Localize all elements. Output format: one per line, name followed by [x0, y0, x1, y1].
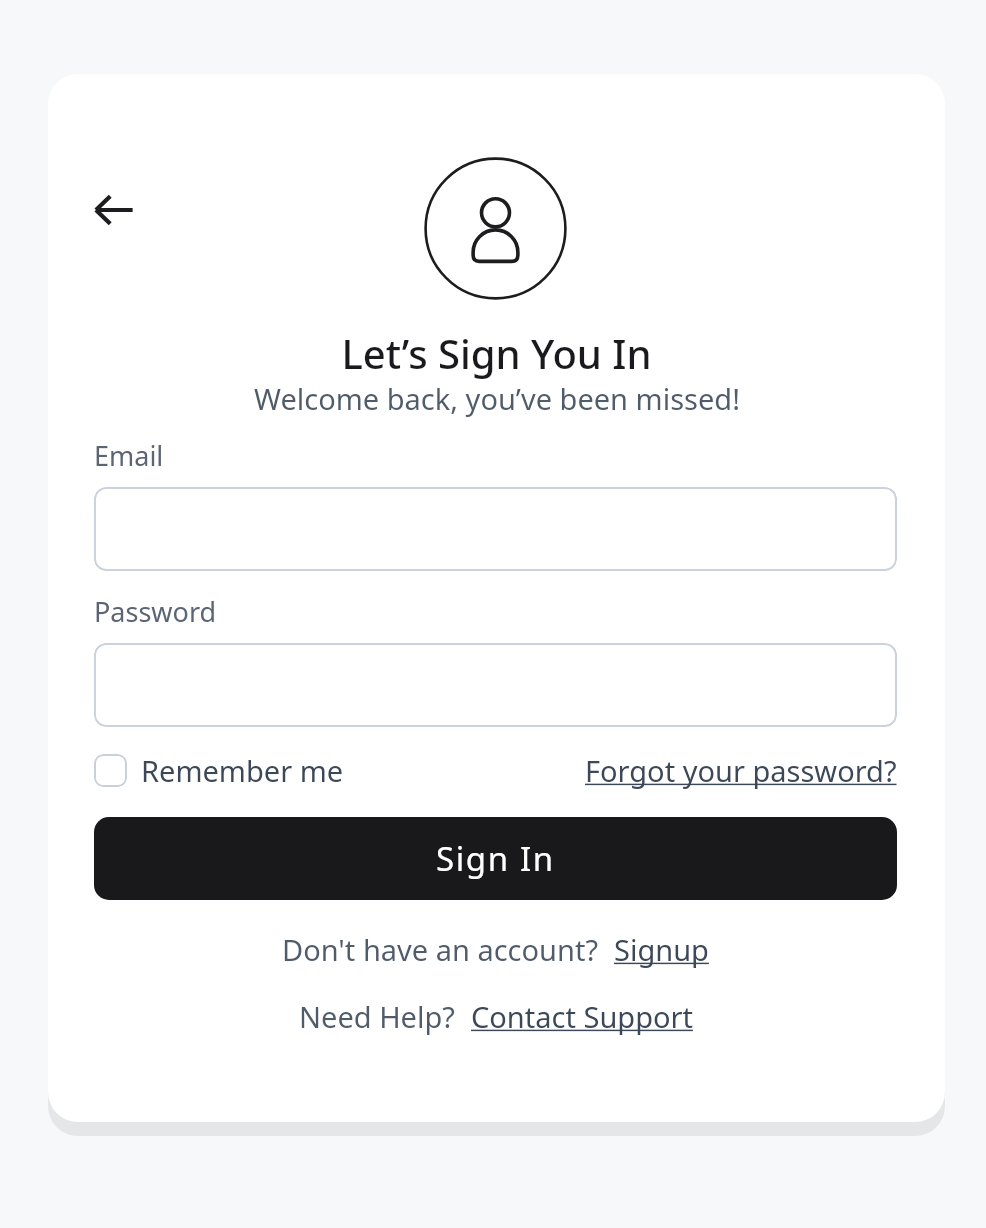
button[interactable]: Contact Support [471, 997, 693, 1036]
staticText: Forgot your password? [585, 751, 897, 790]
staticText: Email [94, 437, 164, 474]
staticText: Sign In [436, 836, 555, 881]
button[interactable]: Remember me [94, 751, 344, 790]
button[interactable]: Sign In [94, 817, 897, 900]
staticText: Need Help? [299, 997, 455, 1036]
button[interactable] [94, 487, 897, 571]
button[interactable] [94, 643, 897, 727]
staticText: Don't have an account? [282, 930, 598, 969]
staticText: Password [94, 593, 217, 630]
staticText: Remember me [141, 751, 344, 790]
staticText: Let’s Sign You In [341, 326, 652, 380]
staticText: Contact Support [471, 997, 693, 1036]
button[interactable]: Forgot your password? [585, 751, 897, 790]
staticText: Welcome back, you’ve been missed! [254, 379, 740, 418]
staticText: Signup [614, 930, 709, 969]
button[interactable]: Signup [614, 930, 709, 969]
button[interactable]: Back [78, 174, 150, 246]
